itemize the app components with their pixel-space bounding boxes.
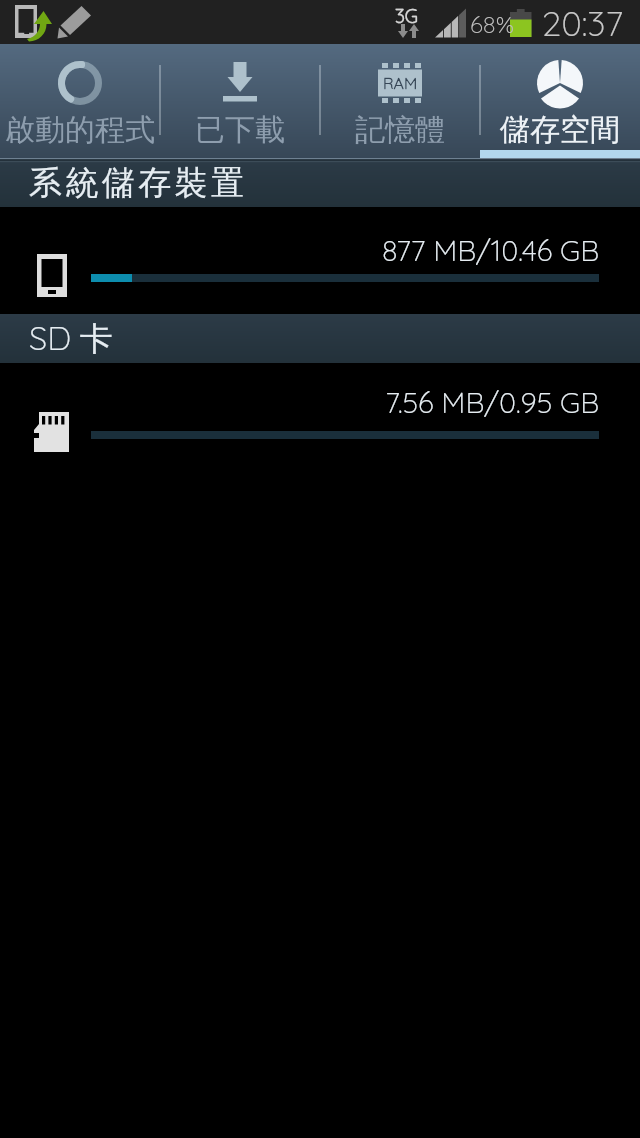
staticText: 3G [395, 4, 419, 28]
button[interactable]: 已下載 [160, 44, 320, 150]
staticText: 已下載 [195, 111, 285, 149]
button[interactable]: 儲存空間 [480, 44, 640, 150]
staticText: 啟動的程式 [5, 111, 155, 149]
staticText: RAM [383, 73, 418, 93]
staticText: 20:37 [542, 1, 624, 45]
staticText: 記憶體 [355, 111, 445, 149]
button[interactable]: 7.56 MB/0.95 GB [0, 363, 640, 473]
button[interactable]: USB file transfer [10, 0, 56, 44]
staticText: 68% [470, 9, 514, 39]
staticText: 7.56 MB/0.95 GB [91, 384, 599, 420]
button[interactable]: S Note [56, 0, 96, 44]
staticText: 儲存空間 [500, 111, 620, 149]
staticText: 系統儲存裝置 [29, 162, 248, 204]
staticText: SD 卡 [29, 317, 113, 360]
button[interactable]: 877 MB/10.46 GB [0, 207, 640, 314]
button[interactable]: RAM [320, 44, 480, 150]
button[interactable]: 啟動的程式 [0, 44, 160, 150]
staticText: 877 MB/10.46 GB [91, 232, 599, 268]
